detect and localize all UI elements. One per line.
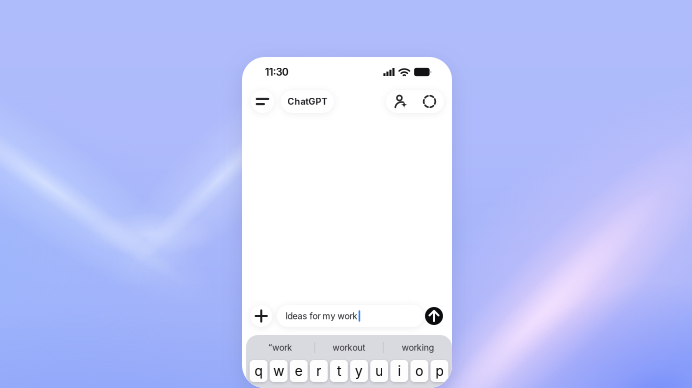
button[interactable]: i (390, 360, 408, 382)
staticText: “work (268, 342, 292, 353)
button[interactable]: Share chat (389, 90, 412, 113)
staticText: t (337, 363, 341, 379)
button[interactable]: o (410, 360, 428, 382)
staticText: Ideas for my work (285, 311, 357, 321)
button[interactable]: working (384, 335, 451, 360)
button[interactable]: workout (315, 335, 383, 360)
button[interactable]: r (310, 360, 328, 382)
staticText: y (355, 363, 363, 379)
button[interactable]: Sidebar (251, 90, 274, 113)
button[interactable]: ChatGPT (281, 90, 334, 113)
staticText: 11:30 (265, 66, 289, 78)
button[interactable]: t (330, 360, 348, 382)
staticText: i (398, 363, 401, 379)
button[interactable]: w (270, 360, 288, 382)
staticText: e (295, 363, 303, 379)
staticText: o (415, 363, 423, 379)
staticText: w (273, 363, 284, 379)
button[interactable]: “work (246, 335, 314, 360)
button[interactable]: y (350, 360, 368, 382)
staticText: workout (332, 342, 365, 353)
button[interactable]: p (430, 360, 448, 382)
button[interactable]: q (250, 360, 267, 382)
staticText: ChatGPT (287, 96, 327, 107)
button[interactable]: Send (425, 307, 443, 325)
staticText: u (375, 363, 383, 379)
button[interactable]: e (290, 360, 308, 382)
button[interactable]: Temporary chat (418, 90, 441, 113)
staticText: p (435, 363, 443, 379)
staticText: q (254, 363, 262, 379)
staticText: working (402, 342, 434, 353)
button[interactable]: Add attachment (250, 305, 272, 327)
staticText: r (316, 363, 321, 379)
button[interactable]: u (370, 360, 388, 382)
